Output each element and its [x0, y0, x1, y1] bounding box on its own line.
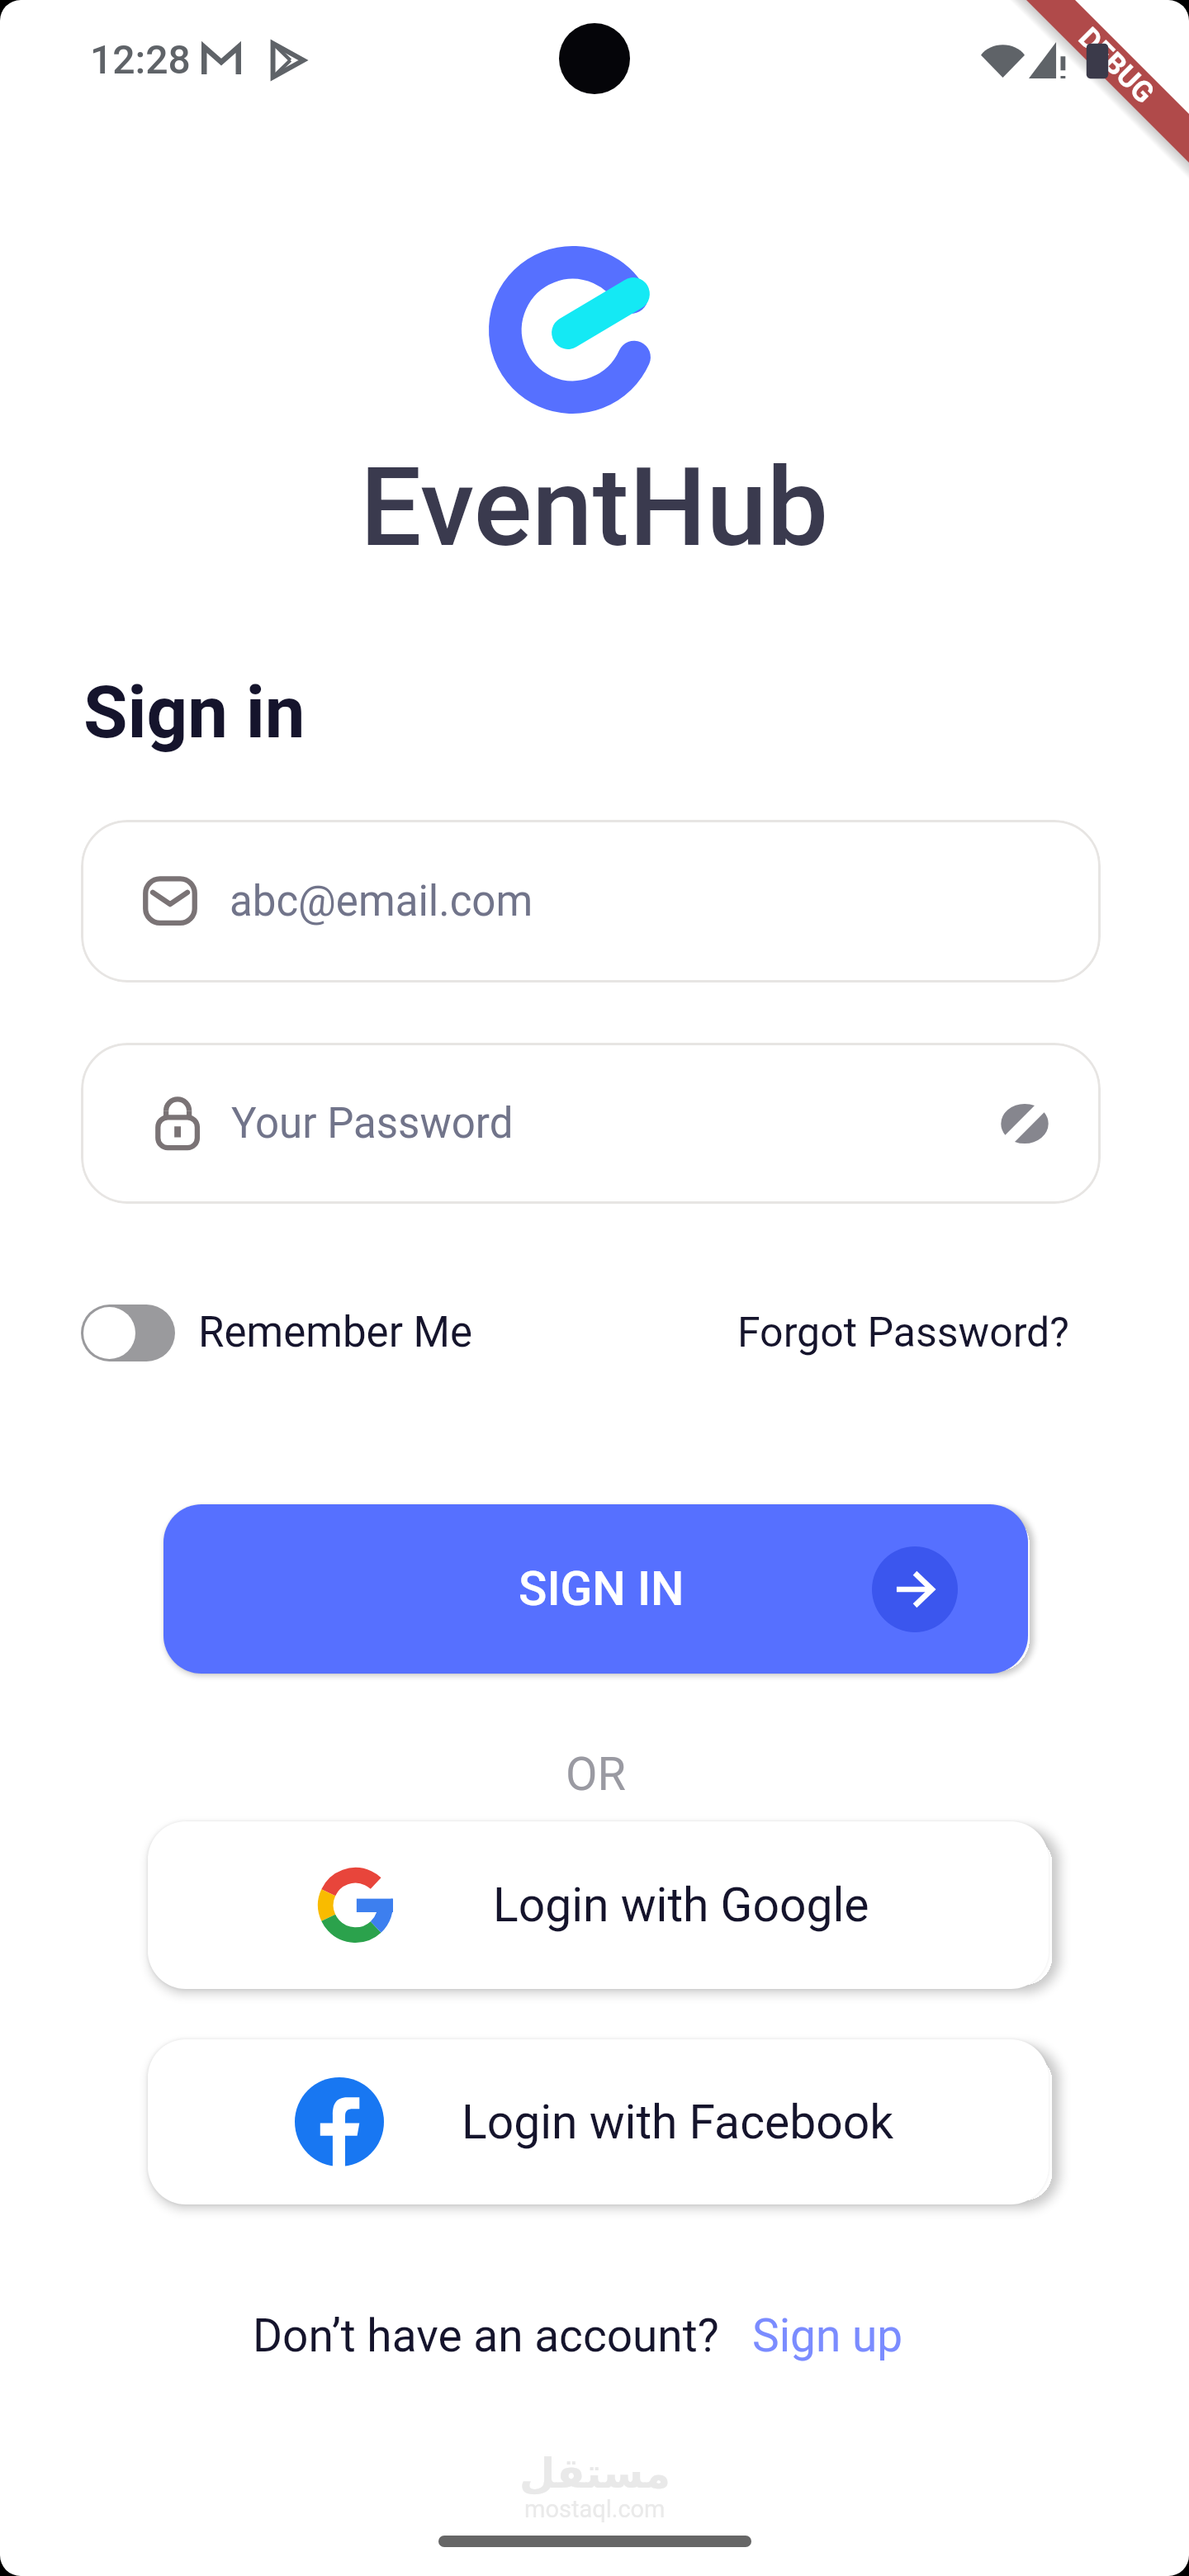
- button[interactable]: SIGN IN: [163, 1504, 1028, 1674]
- staticText: SIGN IN: [519, 1561, 685, 1617]
- staticText: Don’t have an account?: [253, 2309, 719, 2362]
- button[interactable]: Forgot Password?: [737, 1303, 1069, 1362]
- button[interactable]: Login with Google: [148, 1821, 1049, 1989]
- staticText: OR: [566, 1747, 627, 1802]
- button[interactable]: Login with Facebook: [148, 2039, 1049, 2204]
- staticText: EventHub: [360, 444, 829, 572]
- staticText: mostaql.com: [524, 2495, 666, 2523]
- staticText: Forgot Password?: [737, 1309, 1069, 1357]
- staticText: Your Password: [231, 1099, 514, 1148]
- button[interactable]: Remember Me: [81, 1303, 473, 1362]
- staticText: abc@email.com: [230, 877, 533, 926]
- staticText: Remember Me: [198, 1308, 473, 1357]
- staticText: Login with Google: [493, 1878, 869, 1933]
- button[interactable]: Show password: [993, 1092, 1055, 1154]
- staticText: Sign up: [752, 2309, 903, 2362]
- staticText: DEBUG: [1072, 21, 1161, 110]
- button[interactable]: Your Password: [81, 1043, 1101, 1204]
- staticText: Login with Facebook: [462, 2095, 894, 2150]
- staticText: 12:28: [90, 36, 191, 83]
- staticText: مستقل: [519, 2450, 670, 2498]
- button[interactable]: Sign up: [752, 2299, 903, 2352]
- button[interactable]: abc@email.com: [81, 820, 1101, 983]
- staticText: Sign in: [83, 670, 306, 755]
